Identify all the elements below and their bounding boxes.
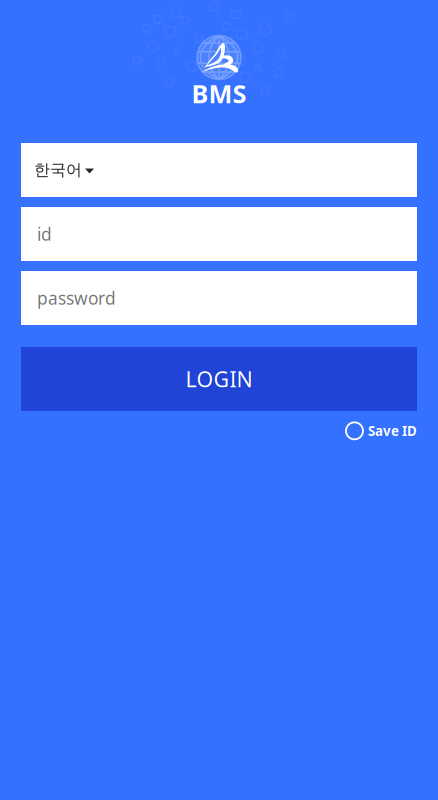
button[interactable]: Save ID	[346, 422, 417, 440]
staticText: Save ID	[368, 422, 417, 440]
button[interactable]: 한국어	[21, 143, 417, 197]
staticText: id	[37, 222, 52, 245]
button[interactable]: id	[21, 207, 417, 261]
staticText: 한국어	[34, 160, 82, 180]
button[interactable]: LOGIN	[21, 347, 417, 411]
button[interactable]: password	[21, 271, 417, 325]
staticText: BMS	[191, 77, 246, 110]
staticText: LOGIN	[185, 365, 252, 393]
staticText: password	[37, 286, 116, 309]
